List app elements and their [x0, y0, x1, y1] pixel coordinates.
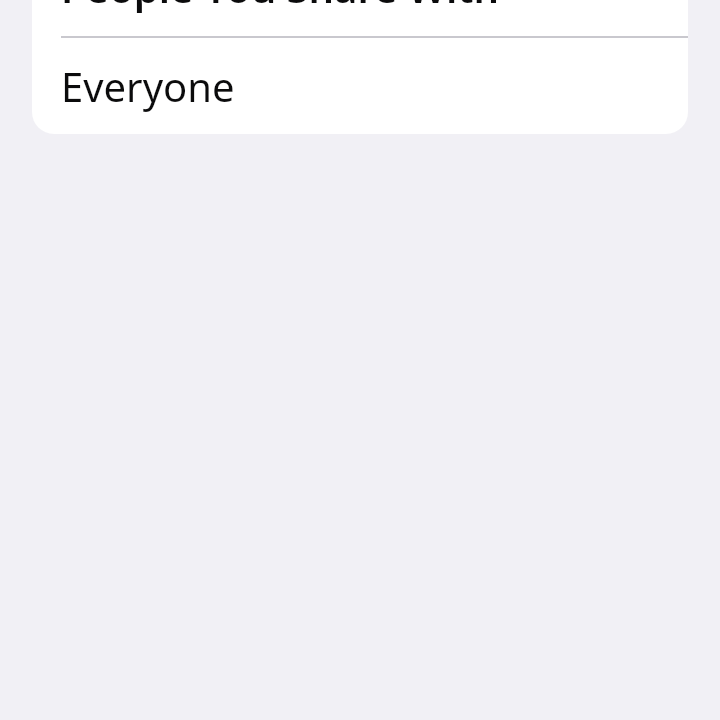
staticText: People You Share With: [61, 0, 625, 14]
staticText: Everyone: [61, 59, 235, 113]
button[interactable]: People You Share With: [32, 0, 688, 36]
button[interactable]: Everyone: [32, 38, 688, 134]
